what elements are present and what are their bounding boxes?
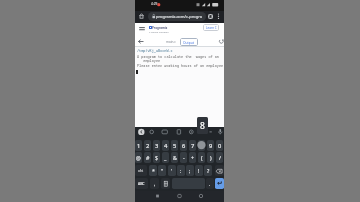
button[interactable]	[217, 13, 220, 20]
button[interactable]: 5	[171, 140, 178, 151]
button[interactable]	[198, 140, 205, 151]
button[interactable]	[139, 27, 145, 31]
staticText: ;	[189, 167, 191, 174]
button[interactable]	[148, 12, 206, 21]
staticText: :	[180, 167, 182, 174]
button[interactable]	[138, 39, 144, 44]
staticText: "	[161, 167, 164, 174]
staticText: (	[201, 154, 203, 161]
staticText: +	[191, 154, 194, 161]
button[interactable]: ,	[150, 178, 159, 189]
staticText: )	[210, 154, 212, 161]
staticText: 4:29	[151, 2, 158, 6]
staticText: 5	[173, 142, 177, 150]
button[interactable]: &	[171, 152, 178, 163]
button[interactable]: *	[149, 165, 157, 176]
staticText: -	[183, 154, 185, 161]
staticText: Learn C	[206, 26, 217, 30]
staticText: programiz.com/c-progra	[156, 14, 202, 19]
button[interactable]: ABC	[135, 178, 148, 189]
button[interactable]: 9	[207, 140, 214, 151]
button[interactable]: 3	[153, 140, 160, 151]
button[interactable]: :	[177, 165, 185, 176]
button[interactable]: 1	[135, 140, 142, 151]
button[interactable]	[215, 165, 224, 176]
staticText: 1	[137, 142, 141, 150]
staticText: ABC	[138, 181, 145, 186]
button[interactable]: Learn C	[203, 24, 219, 31]
staticText: _	[164, 154, 167, 161]
staticText: $	[155, 154, 158, 161]
staticText: 3	[155, 142, 159, 150]
staticText: #	[146, 154, 150, 161]
button[interactable]: !	[195, 165, 203, 176]
staticText: .	[209, 180, 211, 187]
staticText: 4	[164, 142, 168, 150]
button[interactable]: _	[162, 152, 169, 163]
button[interactable]: )	[207, 152, 214, 163]
staticText: @	[136, 154, 141, 161]
staticText: &	[173, 154, 177, 161]
button[interactable]: 6	[180, 140, 187, 151]
staticText: employee	[137, 58, 161, 63]
staticText: Programiz	[152, 26, 168, 30]
button[interactable]	[161, 178, 170, 189]
staticText: ?	[207, 167, 210, 174]
button[interactable]: +	[189, 152, 196, 163]
staticText: '	[171, 167, 173, 174]
staticText: /	[219, 154, 221, 161]
button[interactable]: @	[135, 152, 142, 163]
staticText: C Online Compiler	[149, 31, 169, 34]
staticText: 9	[209, 142, 213, 150]
button[interactable]: 4	[162, 140, 169, 151]
staticText: 13	[209, 15, 213, 19]
button[interactable]: -	[180, 152, 187, 163]
staticText: main.c	[166, 40, 176, 44]
button[interactable]	[139, 13, 144, 19]
button[interactable]	[208, 14, 213, 19]
button[interactable]: 7	[189, 140, 196, 151]
button[interactable]	[215, 178, 224, 189]
staticText: !	[198, 167, 200, 174]
staticText: Output	[183, 40, 195, 44]
staticText: 6	[182, 142, 186, 150]
button[interactable]: #	[144, 152, 151, 163]
staticText: ,	[154, 180, 156, 187]
staticText: =\<	[138, 168, 144, 173]
staticText: 0	[218, 142, 222, 150]
button[interactable]: .	[206, 178, 214, 189]
staticText: Please enter working hours of an employe…	[137, 63, 224, 68]
staticText: A program to calculate the wages of an	[137, 54, 219, 59]
button[interactable]: =\<	[135, 165, 147, 176]
staticText: /tmp/vKj_uBxcnW.c	[137, 48, 173, 53]
button[interactable]: '	[168, 165, 176, 176]
staticText: 8	[200, 120, 205, 132]
button[interactable]: $	[153, 152, 160, 163]
button[interactable]: Output	[180, 38, 198, 46]
button[interactable]: ?	[204, 165, 212, 176]
staticText: 7	[191, 142, 195, 150]
staticText: *	[152, 167, 155, 174]
button[interactable]: ;	[186, 165, 194, 176]
button[interactable]: /	[216, 152, 223, 163]
button[interactable]	[219, 39, 224, 44]
button[interactable]: "	[158, 165, 166, 176]
button[interactable]: (	[198, 152, 205, 163]
button[interactable]: 2	[144, 140, 151, 151]
staticText: 2	[146, 142, 150, 150]
button[interactable]: 0	[216, 140, 223, 151]
